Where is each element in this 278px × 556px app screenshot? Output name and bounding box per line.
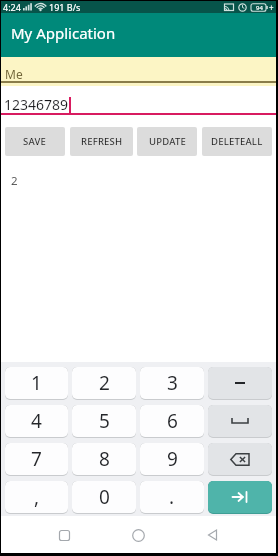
button[interactable]: ,: [5, 481, 68, 514]
button[interactable]: [201, 523, 225, 547]
staticText: 191 B/s: [49, 1, 81, 13]
button[interactable]: 0: [72, 481, 136, 514]
staticText: 6: [167, 408, 178, 434]
button[interactable]: 5: [72, 405, 136, 438]
button[interactable]: 2: [72, 367, 136, 400]
staticText: 1: [31, 370, 42, 396]
button[interactable]: UPDATE: [137, 127, 197, 156]
staticText: 3: [167, 370, 178, 396]
button[interactable]: 8: [72, 443, 136, 476]
staticText: 7: [31, 446, 42, 472]
staticText: 5: [99, 408, 110, 434]
staticText: 12346789: [4, 95, 69, 114]
button[interactable]: SAVE: [5, 127, 65, 156]
button[interactable]: 6: [140, 405, 204, 438]
button[interactable]: 1: [5, 367, 68, 400]
staticText: 2: [99, 370, 110, 396]
button[interactable]: 9: [140, 443, 204, 476]
button[interactable]: 7: [5, 443, 68, 476]
staticText: 0: [99, 484, 110, 510]
staticText: 2: [11, 173, 18, 189]
staticText: 94: [256, 4, 263, 12]
staticText: Me: [5, 66, 23, 82]
button[interactable]: 2: [11, 173, 18, 189]
button[interactable]: [208, 367, 272, 400]
button[interactable]: [208, 405, 272, 438]
button[interactable]: [52, 523, 76, 547]
button[interactable]: 12346789: [1, 86, 276, 115]
button[interactable]: [208, 481, 272, 514]
staticText: 4: [31, 408, 42, 434]
button[interactable]: 4: [5, 405, 68, 438]
staticText: UPDATE: [149, 135, 186, 148]
staticText: .: [169, 484, 175, 510]
staticText: My Application: [11, 23, 116, 43]
staticText: DELETEALL: [211, 135, 263, 148]
staticText: SAVE: [23, 135, 47, 148]
button[interactable]: REFRESH: [70, 127, 133, 156]
button[interactable]: Me: [1, 57, 276, 86]
staticText: 4:24: [3, 1, 21, 13]
staticText: +: [269, 2, 274, 13]
staticText: 9: [167, 446, 178, 472]
staticText: ,: [34, 484, 40, 510]
staticText: 8: [99, 446, 110, 472]
button[interactable]: .: [140, 481, 204, 514]
button[interactable]: 3: [140, 367, 204, 400]
button[interactable]: [208, 443, 272, 476]
button[interactable]: DELETEALL: [202, 127, 272, 156]
button[interactable]: [126, 523, 150, 547]
staticText: REFRESH: [81, 135, 123, 148]
